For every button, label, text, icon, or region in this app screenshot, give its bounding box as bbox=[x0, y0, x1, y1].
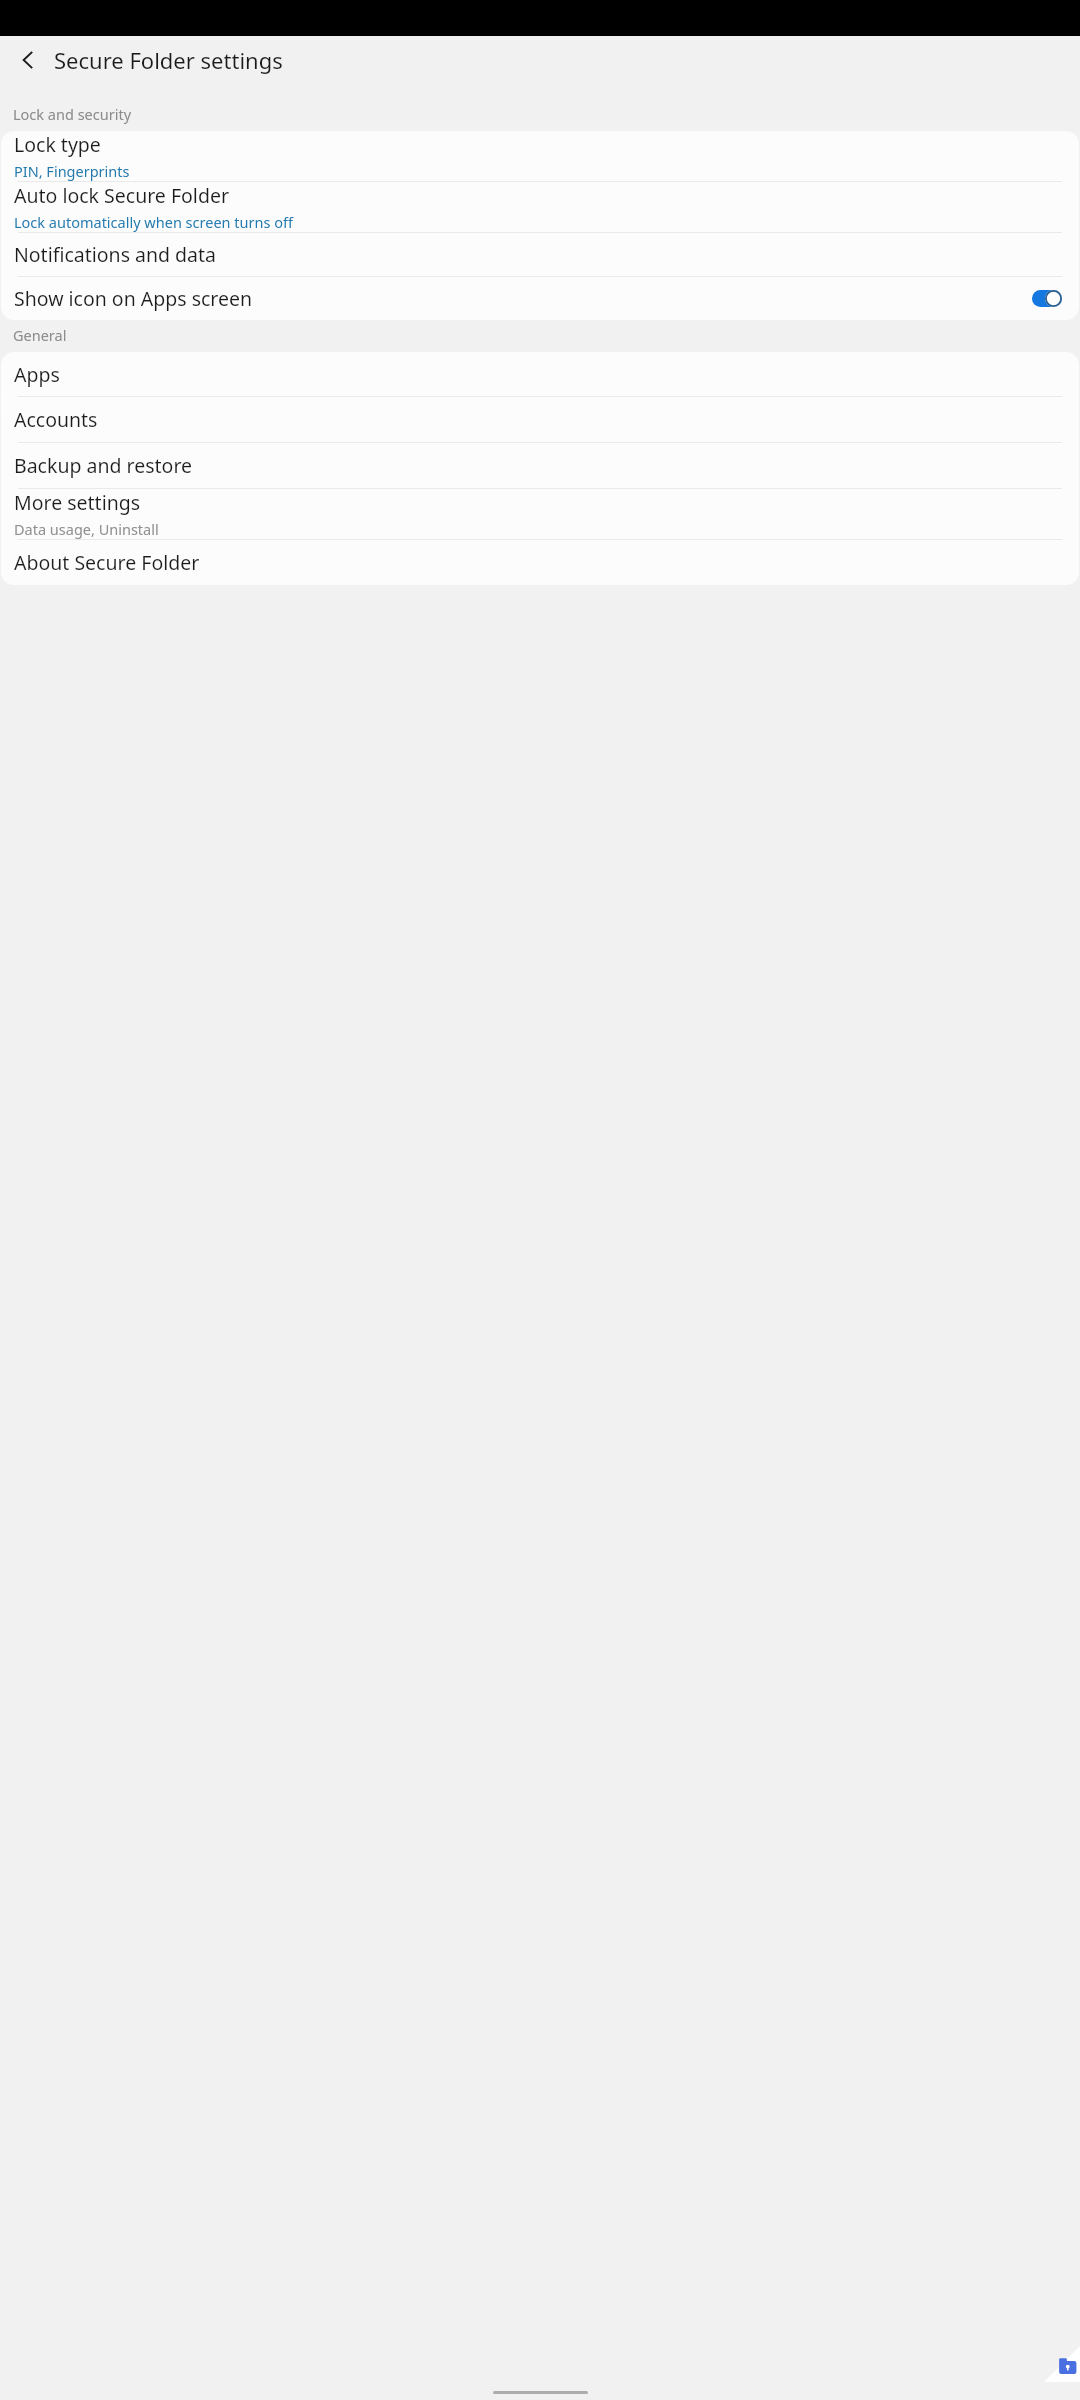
button[interactable]: About Secure Folder bbox=[1, 540, 1079, 585]
button[interactable]: Backup and restore bbox=[1, 443, 1079, 488]
button[interactable]: Notifications and data bbox=[1, 233, 1079, 276]
staticText: Lock and security bbox=[13, 104, 132, 124]
button[interactable]: Auto lock Secure Folder bbox=[1, 182, 1079, 232]
staticText: Auto lock Secure Folder bbox=[14, 182, 229, 209]
staticText: Lock automatically when screen turns off bbox=[14, 212, 293, 232]
staticText: Secure Folder settings bbox=[54, 45, 283, 75]
button[interactable]: Navigate up bbox=[8, 40, 48, 80]
staticText: Data usage, Uninstall bbox=[14, 519, 159, 539]
staticText: General bbox=[13, 325, 67, 345]
staticText: Lock type bbox=[14, 131, 101, 158]
staticText: Notifications and data bbox=[14, 241, 217, 268]
staticText: PIN, Fingerprints bbox=[14, 161, 130, 181]
staticText: Backup and restore bbox=[14, 452, 193, 479]
staticText: Apps bbox=[14, 361, 60, 388]
button[interactable]: Show icon on Apps screen bbox=[1, 277, 1079, 320]
staticText: Show icon on Apps screen bbox=[14, 285, 253, 312]
button[interactable]: Show icon on Apps screen toggle bbox=[1032, 290, 1062, 307]
staticText: Accounts bbox=[14, 406, 98, 433]
staticText: About Secure Folder bbox=[14, 549, 200, 576]
button[interactable]: More settings bbox=[1, 489, 1079, 539]
button[interactable]: Lock type bbox=[1, 131, 1079, 181]
button[interactable]: Apps bbox=[1, 352, 1079, 396]
staticText: More settings bbox=[14, 489, 141, 516]
button[interactable]: Accounts bbox=[1, 397, 1079, 442]
